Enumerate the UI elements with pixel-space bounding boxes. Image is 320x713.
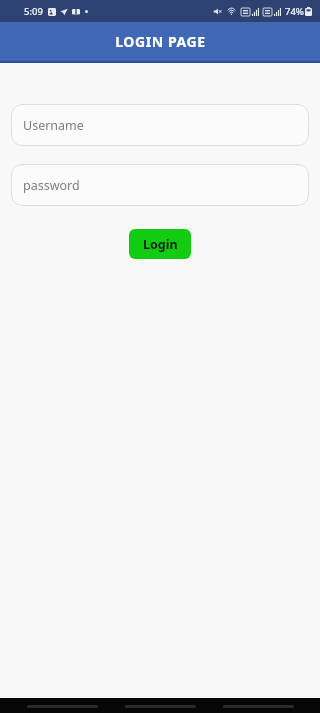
button[interactable]: Username [11, 104, 309, 146]
staticText: Login [143, 236, 178, 253]
button[interactable]: Login [129, 229, 191, 259]
button[interactable]: password [11, 164, 309, 206]
button[interactable]: Home [124, 699, 196, 713]
staticText: password [23, 177, 80, 194]
staticText: 74% [285, 5, 304, 18]
staticText: LOGIN PAGE [115, 32, 206, 51]
button[interactable]: Back [222, 699, 294, 713]
button[interactable]: Recents [26, 699, 98, 713]
staticText: Username [23, 117, 84, 134]
staticText: 5:09 [24, 5, 43, 18]
